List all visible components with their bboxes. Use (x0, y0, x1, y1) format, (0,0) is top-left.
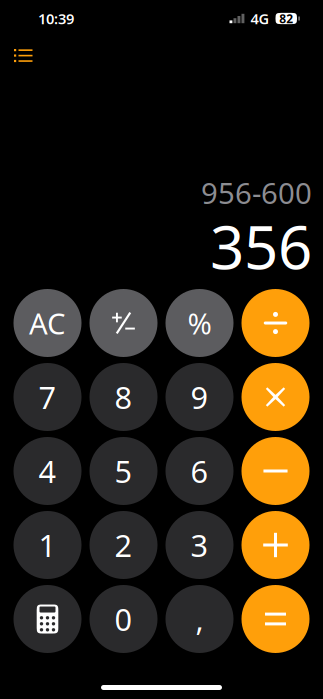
staticText: 2 (114, 524, 132, 566)
staticText: 356 (210, 205, 312, 287)
button[interactable]: 3 (165, 511, 233, 579)
button[interactable]: Divide (241, 289, 309, 357)
staticText: 956-600 (201, 172, 312, 212)
button[interactable]: 7 (13, 363, 81, 431)
staticText: 5 (114, 450, 132, 492)
staticText: 3 (190, 524, 208, 566)
button[interactable]: AC (13, 289, 81, 357)
button[interactable]: 9 (165, 363, 233, 431)
staticText: 4 (38, 450, 56, 492)
staticText: 8 (114, 376, 132, 418)
staticText: , (195, 598, 203, 640)
staticText: % (187, 303, 211, 343)
button[interactable]: Scientific calculator (13, 585, 81, 653)
staticText: 10:39 (38, 8, 74, 28)
button[interactable]: History (0, 37, 42, 67)
button[interactable]: 5 (89, 437, 157, 505)
staticText: 6 (190, 450, 208, 492)
staticText: 1 (38, 524, 56, 566)
button[interactable]: 0 (89, 585, 157, 653)
staticText: 4G (250, 8, 269, 28)
button[interactable]: 4 (13, 437, 81, 505)
staticText: 7 (38, 376, 56, 418)
staticText: AC (29, 303, 66, 343)
button[interactable]: , (165, 585, 233, 653)
button[interactable]: 1 (13, 511, 81, 579)
button[interactable]: Subtract (241, 437, 309, 505)
staticText: 82 (279, 10, 293, 27)
button[interactable]: 8 (89, 363, 157, 431)
button[interactable]: Plus or minus (89, 289, 157, 357)
button[interactable]: 6 (165, 437, 233, 505)
button[interactable]: Multiply (241, 363, 309, 431)
button[interactable]: % (165, 289, 233, 357)
staticText: 9 (190, 376, 208, 418)
staticText: 0 (114, 598, 132, 640)
button[interactable]: Add (241, 511, 309, 579)
button[interactable]: 2 (89, 511, 157, 579)
button[interactable]: Equals (241, 585, 309, 653)
